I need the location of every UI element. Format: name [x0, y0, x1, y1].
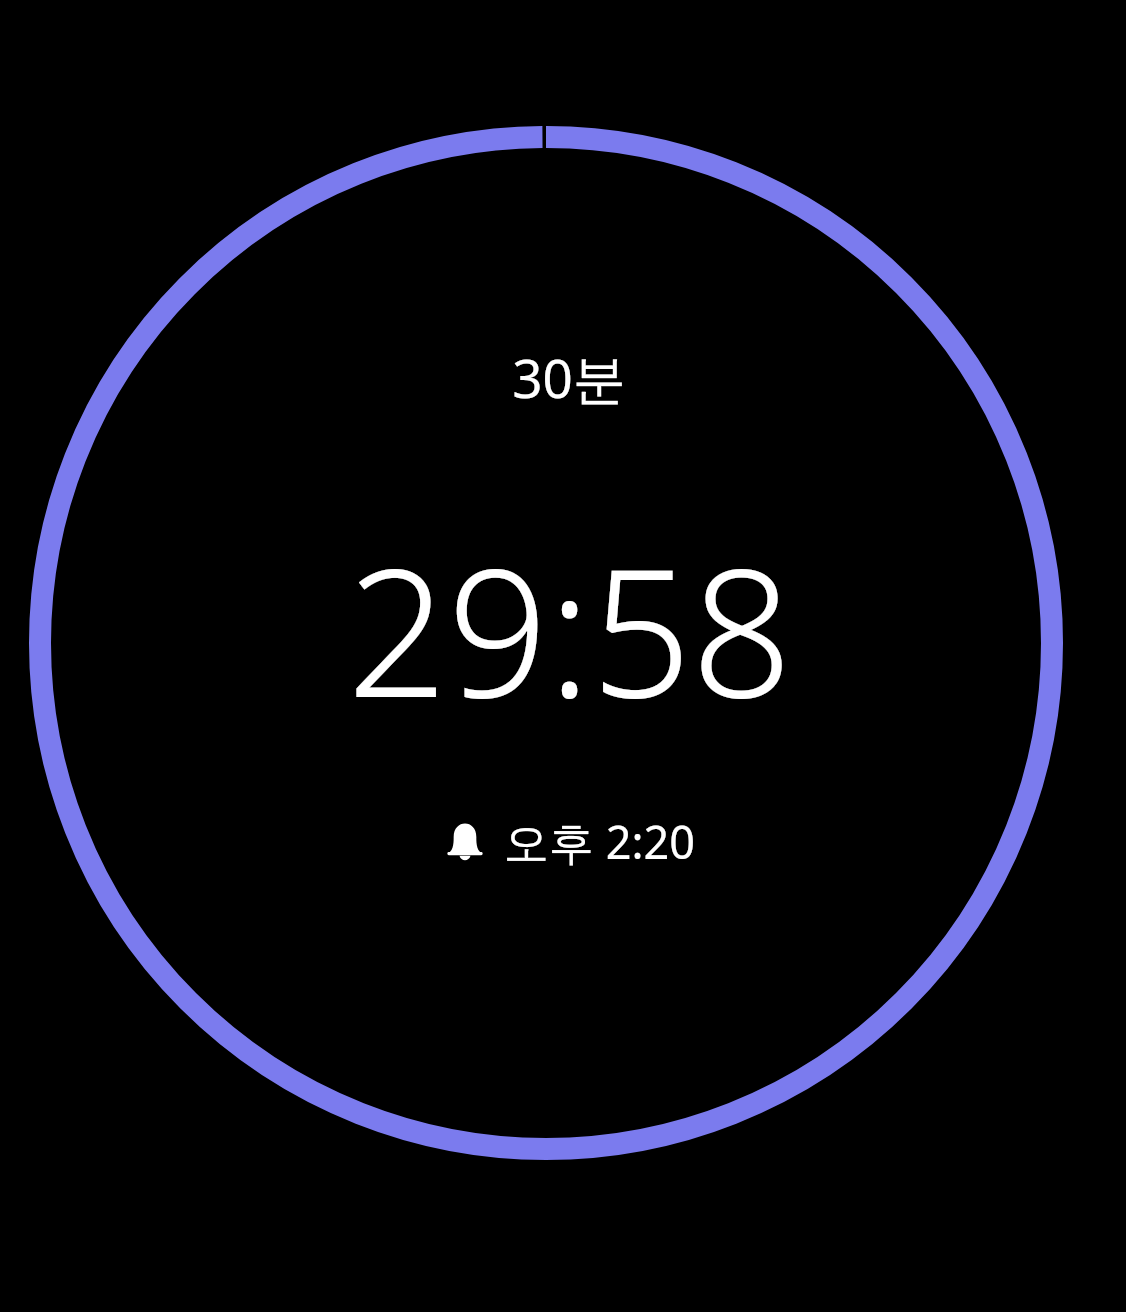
- staticText: 29:58: [347, 509, 792, 749]
- button[interactable]: 29:58: [347, 509, 792, 749]
- staticText: 오후 2:20: [504, 811, 695, 872]
- button[interactable]: 30분: [512, 341, 626, 413]
- other: Alarm: [444, 821, 486, 863]
- staticText: 30분: [512, 341, 626, 413]
- button[interactable]: Alarm: [444, 811, 695, 872]
